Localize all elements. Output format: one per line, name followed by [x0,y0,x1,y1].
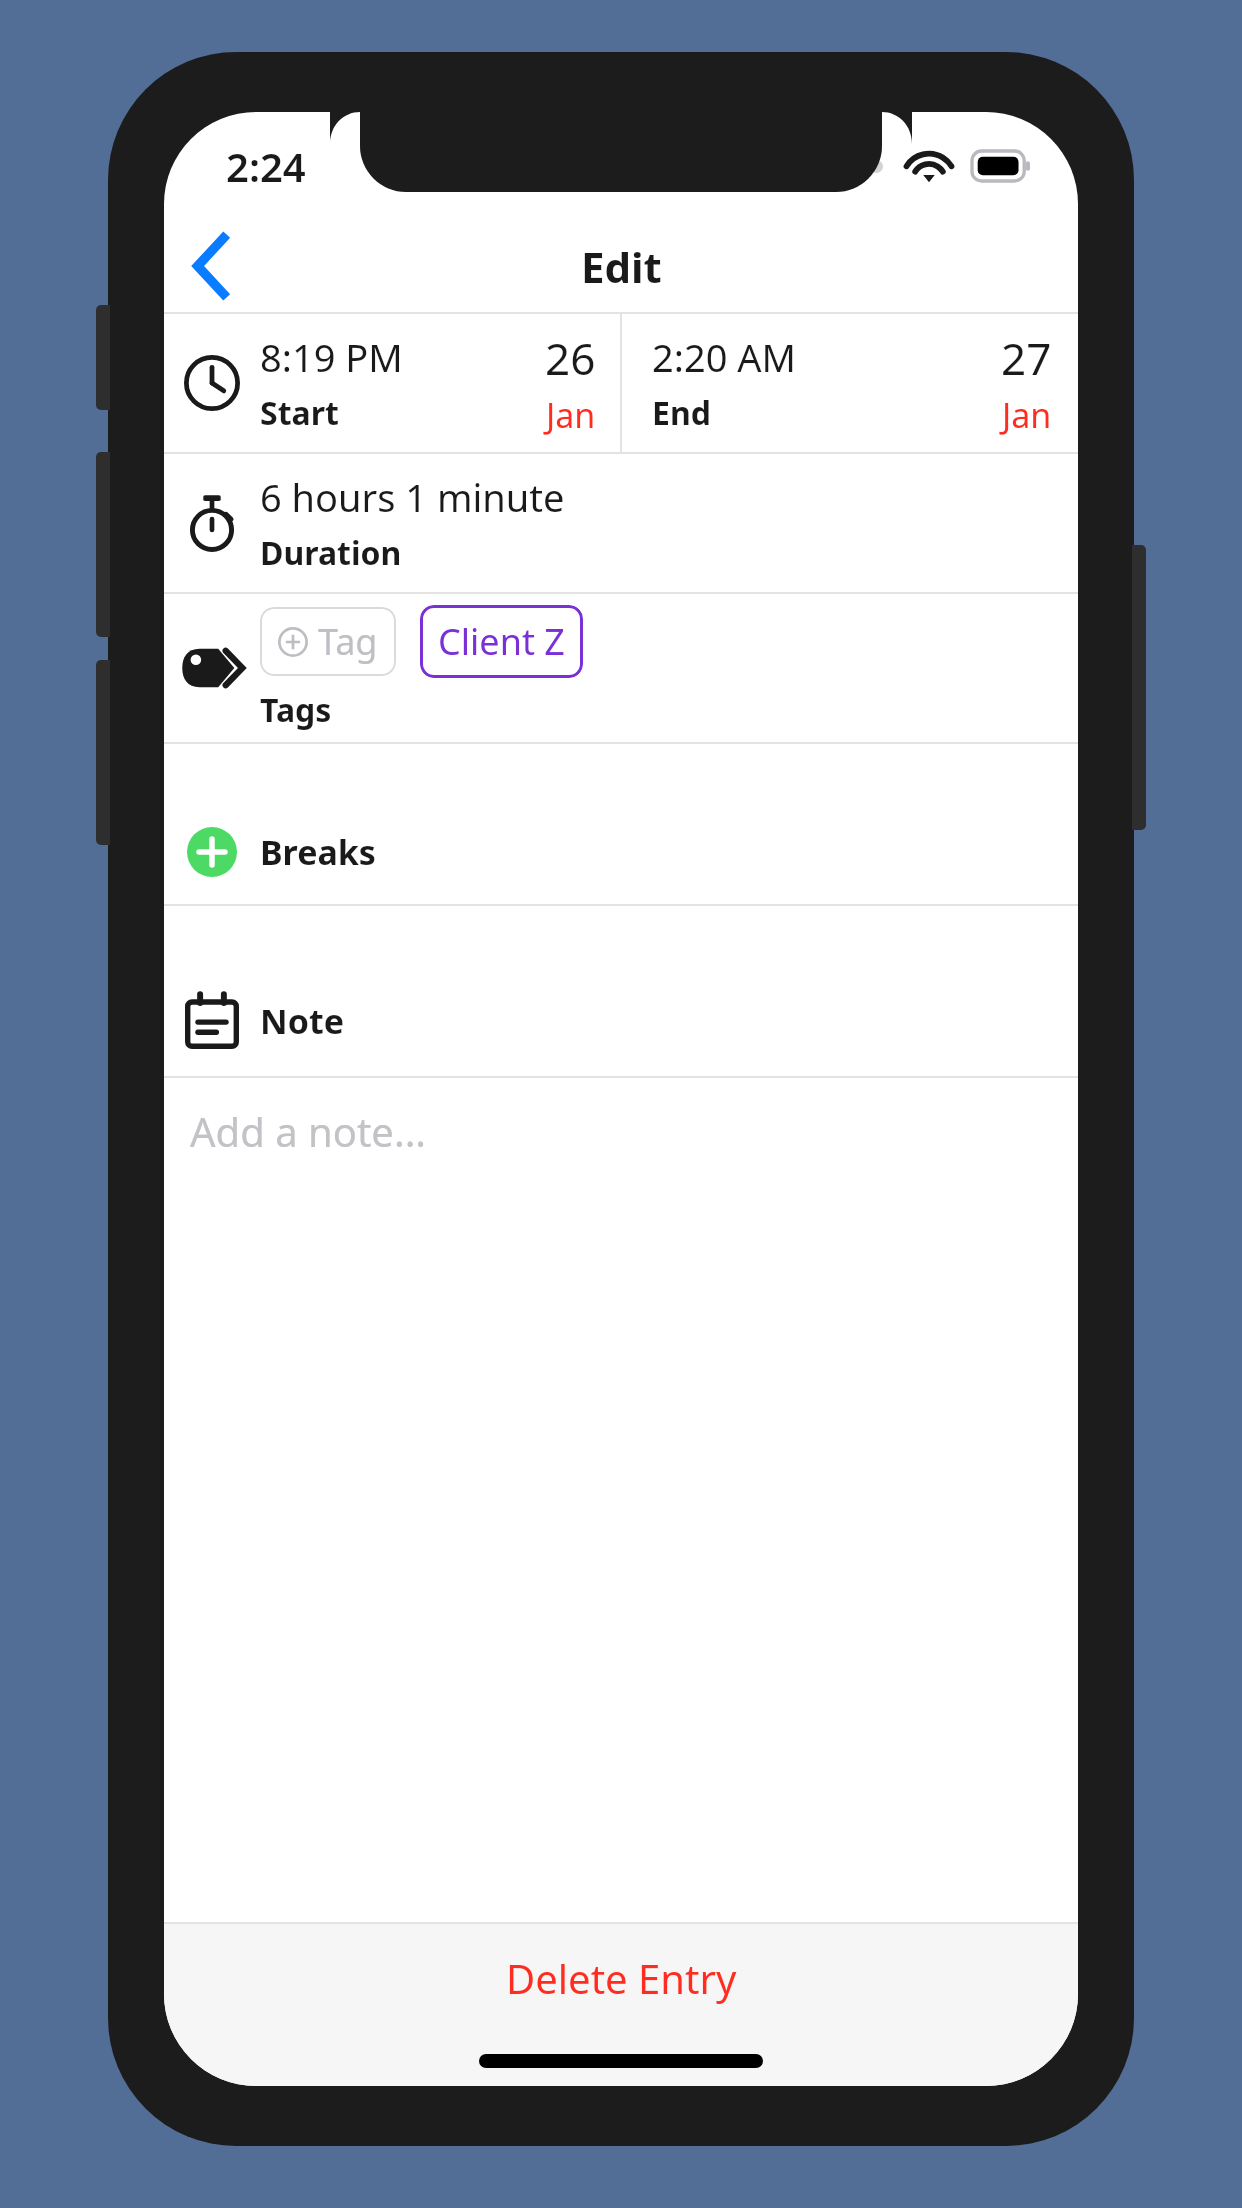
staticText: Delete Entry [506,1951,737,2005]
staticText: Tags [260,688,332,732]
button[interactable]: 2:20 AM [622,314,1078,452]
staticText: End [652,391,711,435]
button[interactable]: Delete Entry [164,1924,1078,2032]
staticText: 8:19 PM [260,331,403,383]
staticText: Note [260,998,344,1044]
staticText: Tag [318,617,378,666]
button[interactable]: 6 hours 1 minute [164,454,1078,592]
button[interactable]: Tag [260,607,396,676]
staticText: 26 [545,328,596,388]
staticText: Jan [1002,392,1052,438]
staticText: Duration [260,531,402,575]
staticText: Add a note... [190,1104,427,1158]
staticText: Breaks [260,829,376,875]
button[interactable]: Breaks [164,800,1078,904]
staticText: Client Z [438,617,565,666]
staticText: 2:20 AM [652,331,797,383]
staticText: 27 [1001,328,1052,388]
button[interactable]: 8:19 PM [164,314,620,452]
button[interactable]: Client Z [420,605,583,678]
staticText: Jan [546,392,596,438]
staticText: 6 hours 1 minute [260,471,565,523]
staticText: Edit [581,238,662,295]
button[interactable]: Tag [164,594,1078,742]
staticText: Start [260,391,339,435]
button[interactable]: Note [164,966,1078,1076]
staticText: 2:24 [226,139,306,193]
button[interactable]: Back [164,220,260,312]
